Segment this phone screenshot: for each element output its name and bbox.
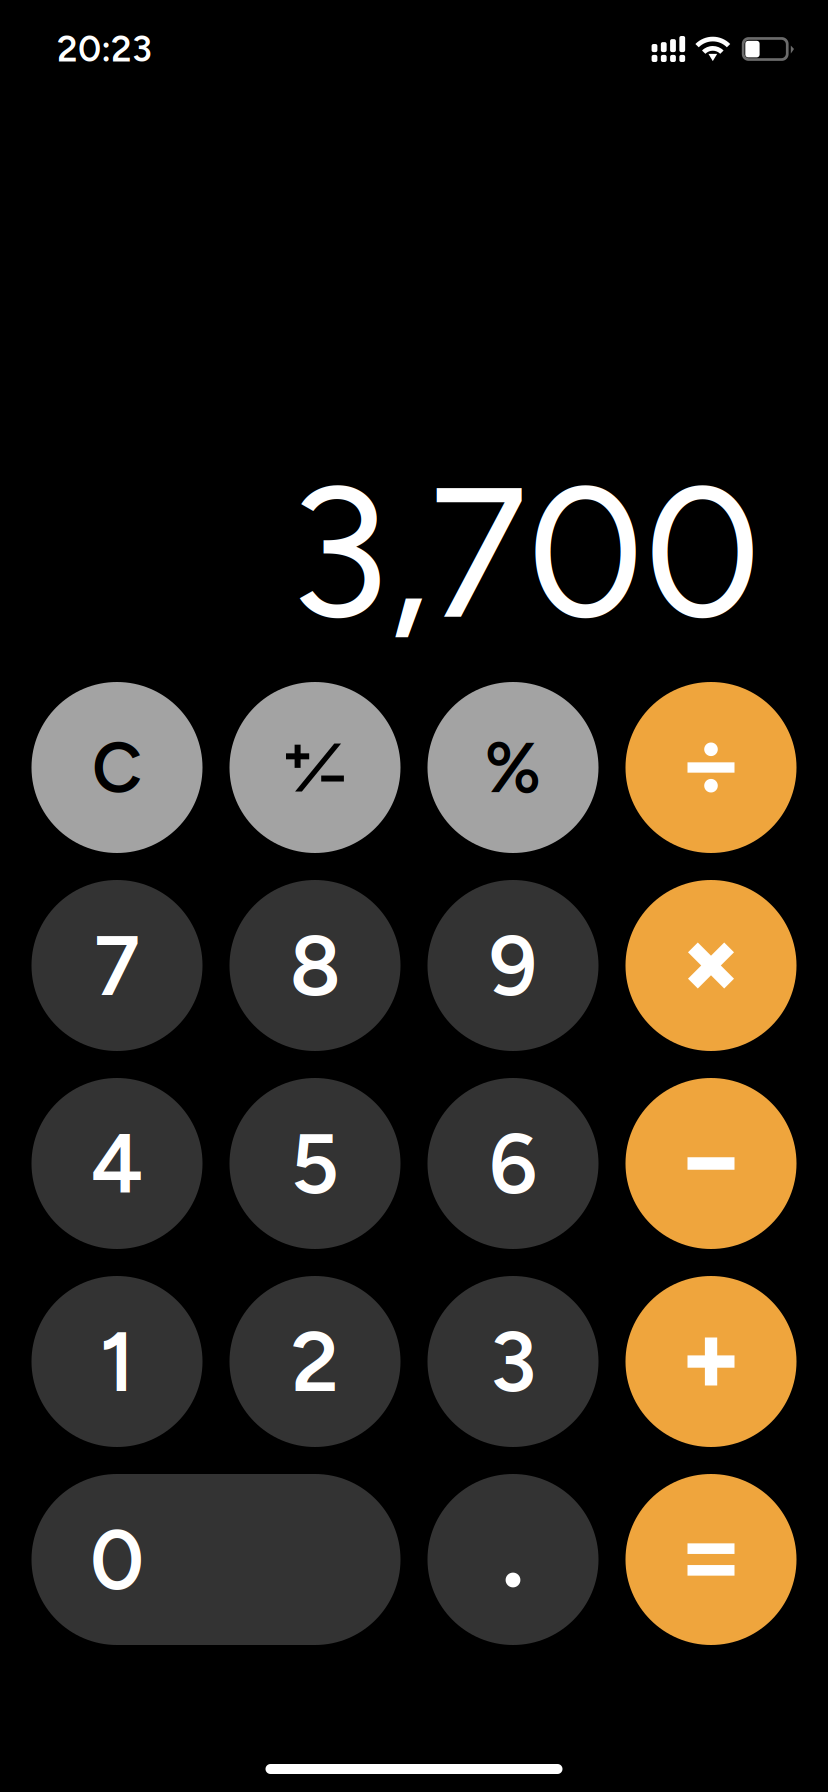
button[interactable]: Plus Minus (229, 682, 400, 853)
staticText: 1 (99, 1311, 134, 1412)
button[interactable]: 1 (31, 1276, 202, 1447)
button[interactable]: 2 (229, 1276, 400, 1447)
staticText: 2 (291, 1311, 339, 1412)
staticText: 8 (289, 915, 340, 1016)
button[interactable]: 3 (427, 1276, 598, 1447)
button[interactable]: Plus (625, 1276, 796, 1447)
button[interactable]: % (427, 682, 598, 853)
button[interactable]: 5 (229, 1078, 400, 1249)
button[interactable]: 9 (427, 880, 598, 1051)
staticText: 6 (489, 1113, 537, 1214)
staticText: 9 (489, 915, 537, 1016)
staticText: 20:23 (57, 27, 152, 71)
button[interactable]: Equals (625, 1474, 796, 1645)
staticText: 0 (90, 1509, 144, 1610)
staticText: 5 (290, 1113, 339, 1214)
button[interactable]: Divide (625, 682, 796, 853)
button[interactable]: C (31, 682, 202, 853)
button[interactable]: Decimal point (427, 1474, 598, 1645)
button[interactable]: Multiply (625, 880, 796, 1051)
button[interactable]: 8 (229, 880, 400, 1051)
button[interactable]: Minus (625, 1078, 796, 1249)
button[interactable]: 6 (427, 1078, 598, 1249)
button[interactable]: 7 (31, 880, 202, 1051)
staticText: 7 (94, 915, 140, 1016)
staticText: % (484, 725, 541, 810)
button[interactable]: 4 (31, 1078, 202, 1249)
staticText: 4 (90, 1113, 143, 1214)
staticText: 3 (490, 1311, 536, 1412)
staticText: C (92, 726, 142, 809)
button[interactable]: 0 (31, 1474, 400, 1645)
staticText: 3,700 (289, 443, 761, 662)
